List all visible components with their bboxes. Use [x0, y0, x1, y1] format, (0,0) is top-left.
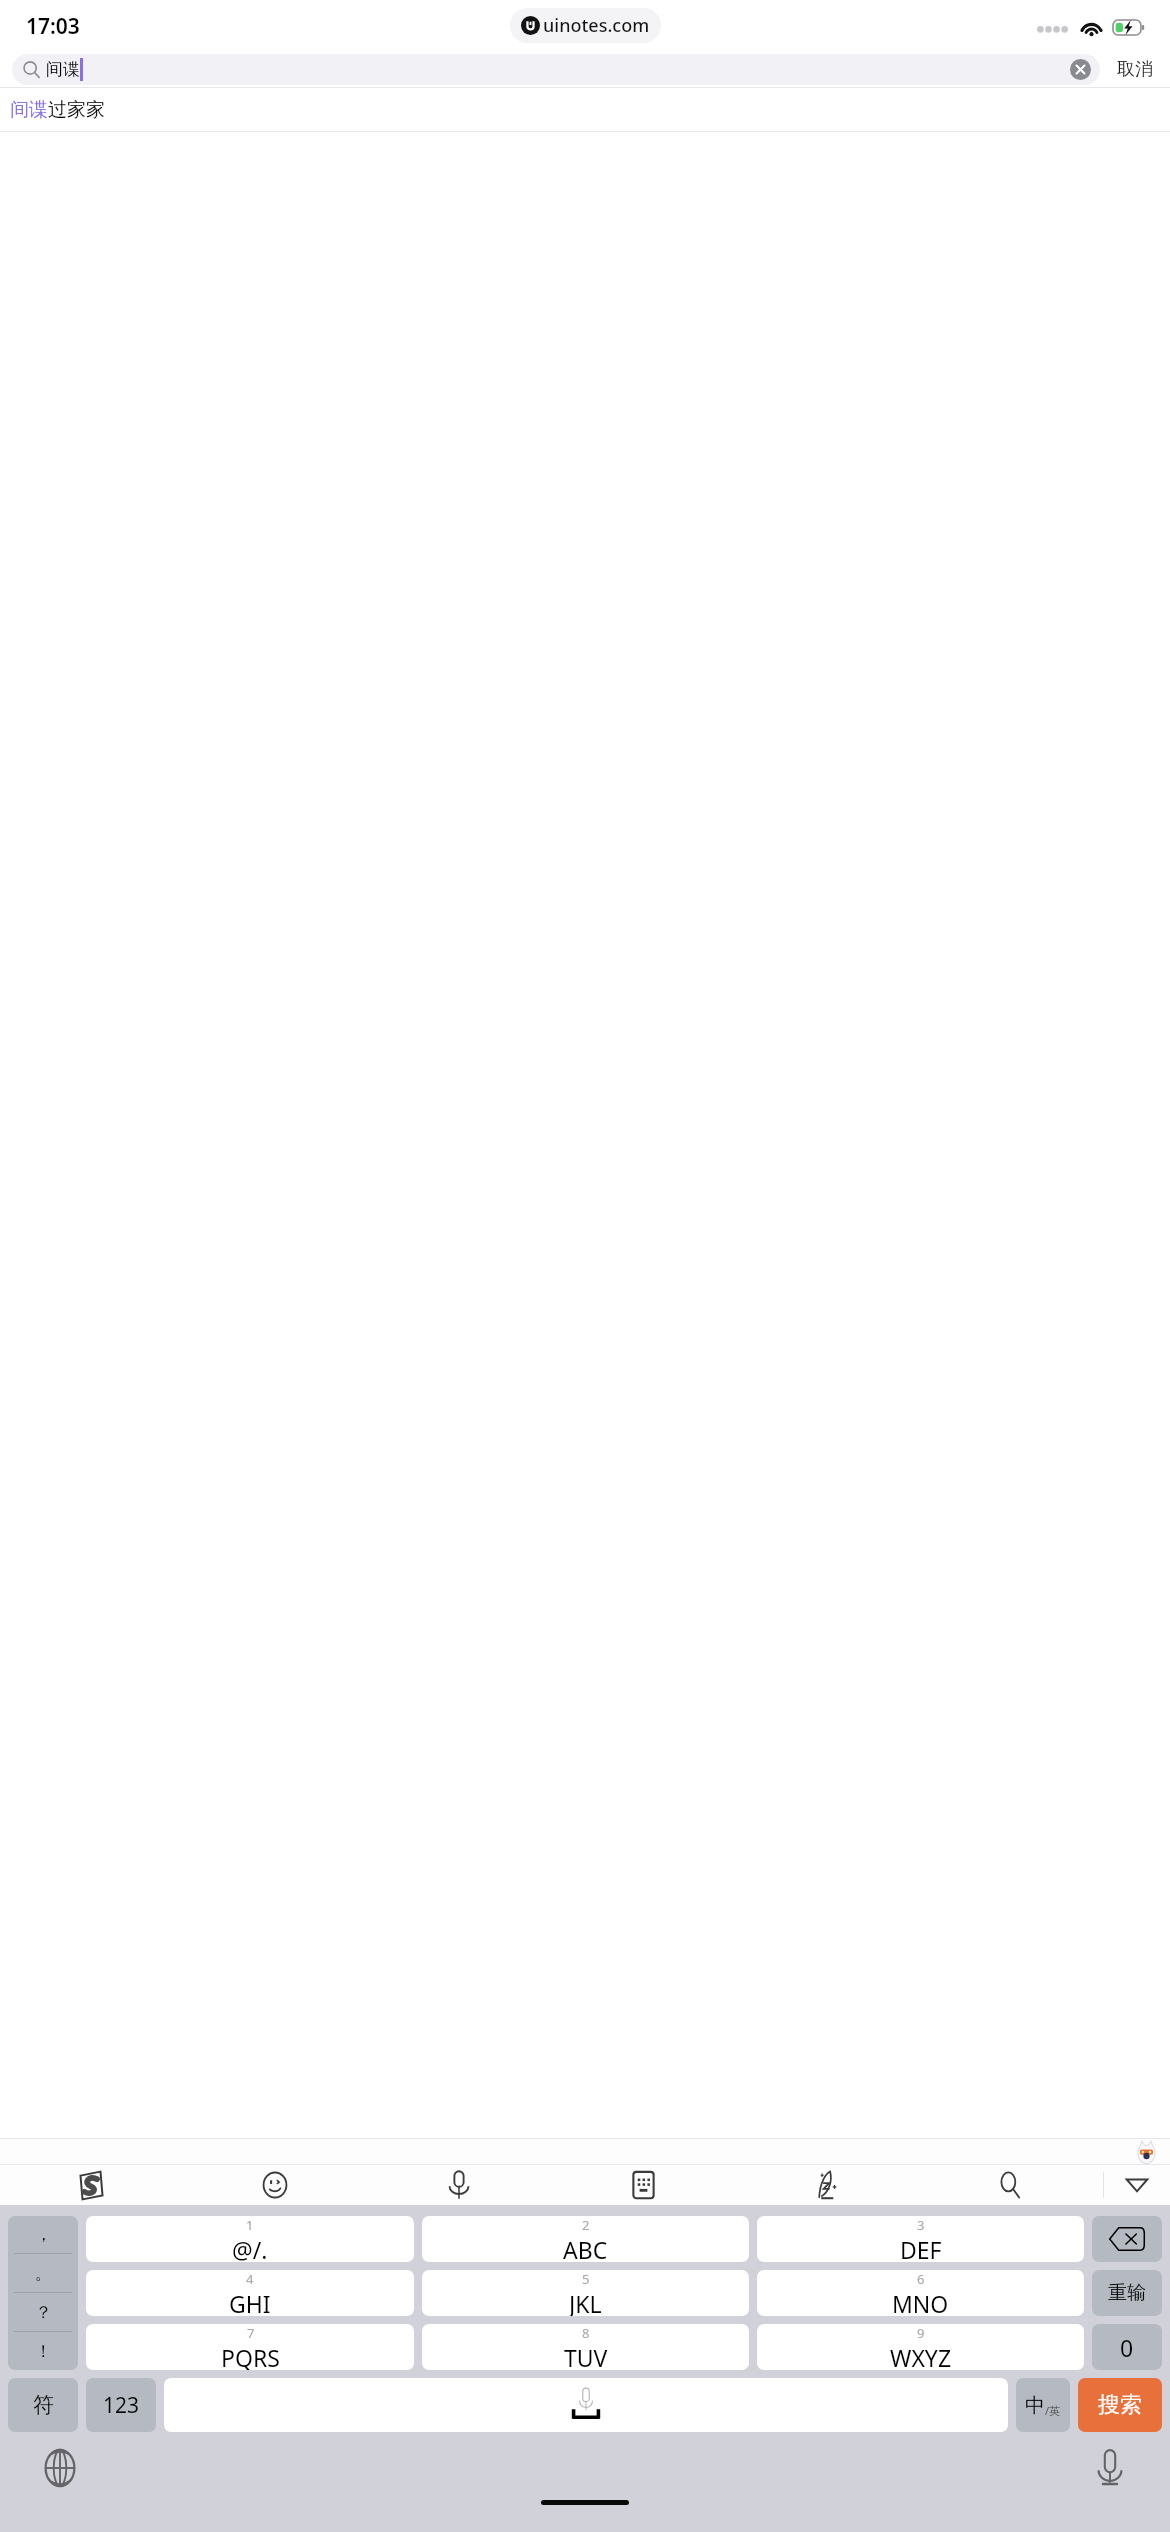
button[interactable]: 取消	[1100, 51, 1170, 87]
staticText: JKL	[569, 2288, 602, 2316]
button[interactable]: 8	[422, 2324, 749, 2370]
staticText: 7	[247, 2324, 255, 2342]
staticText: 123	[103, 2391, 140, 2420]
button[interactable]: Input assistant	[1134, 2139, 1158, 2164]
button[interactable]: 4	[86, 2270, 414, 2316]
button[interactable]: Hide keyboard	[1104, 2165, 1170, 2205]
staticText: ！	[35, 2341, 52, 2362]
button[interactable]: Handwriting	[735, 2165, 919, 2205]
button[interactable]: 6	[757, 2270, 1084, 2316]
button[interactable]: Emoji	[183, 2165, 367, 2205]
staticText: @/.	[232, 2234, 268, 2262]
button[interactable]: Clear	[1070, 59, 1091, 80]
staticText: 8	[582, 2324, 590, 2342]
button[interactable]: 123	[86, 2378, 156, 2432]
staticText: ，	[35, 2224, 52, 2245]
button[interactable]: ，	[8, 2216, 78, 2370]
button[interactable]: Dictate	[1088, 2446, 1132, 2490]
staticText: 4	[246, 2270, 254, 2288]
button[interactable]: Delete	[1092, 2216, 1162, 2262]
button[interactable]: 间谍过家家	[0, 88, 1170, 131]
button[interactable]: Voice input	[367, 2165, 551, 2205]
button[interactable]: 重输	[1092, 2270, 1162, 2316]
button[interactable]: 1	[86, 2216, 414, 2262]
staticText: PQRS	[221, 2342, 280, 2370]
staticText: 0	[1120, 2332, 1134, 2363]
staticText: ？	[35, 2302, 52, 2323]
staticText: MNO	[892, 2288, 949, 2316]
button[interactable]: 搜索	[1078, 2378, 1162, 2432]
staticText: GHI	[229, 2288, 271, 2316]
staticText: 取消	[1117, 58, 1153, 81]
staticText: 符	[33, 2392, 54, 2418]
button[interactable]: 间谍	[12, 54, 1100, 85]
staticText: 5	[582, 2270, 590, 2288]
staticText: uinotes.com	[543, 13, 650, 38]
staticText: DEF	[900, 2234, 942, 2262]
button[interactable]: 中	[1016, 2378, 1070, 2432]
staticText: 间谍过家家	[10, 98, 105, 122]
staticText: 1	[246, 2216, 254, 2234]
button[interactable]: Space	[164, 2378, 1008, 2432]
button[interactable]: Keyboard layout	[551, 2165, 735, 2205]
staticText: TUV	[564, 2342, 608, 2370]
button[interactable]: 7	[86, 2324, 414, 2370]
button[interactable]: 3	[757, 2216, 1084, 2262]
staticText: 9	[917, 2324, 925, 2342]
staticText: /英	[1045, 2403, 1061, 2418]
staticText: 3	[917, 2216, 925, 2234]
staticText: WXYZ	[890, 2342, 952, 2370]
button[interactable]: Sogou	[0, 2165, 183, 2205]
button[interactable]: 符	[8, 2378, 78, 2432]
staticText: 重输	[1108, 2281, 1146, 2305]
staticText: 搜索	[1098, 2391, 1142, 2419]
button[interactable]: 2	[422, 2216, 749, 2262]
button[interactable]: 5	[422, 2270, 749, 2316]
staticText: 17:03	[26, 12, 80, 41]
staticText: 中	[1025, 2393, 1045, 2418]
staticText: 6	[917, 2270, 925, 2288]
button[interactable]: 9	[757, 2324, 1084, 2370]
staticText: ABC	[563, 2234, 608, 2262]
button[interactable]: Search	[919, 2165, 1103, 2205]
staticText: 2	[582, 2216, 590, 2234]
staticText: 。	[35, 2263, 52, 2284]
button[interactable]: Switch keyboard	[38, 2446, 82, 2490]
button[interactable]: 0	[1092, 2324, 1162, 2370]
staticText: 间谍	[46, 59, 80, 80]
